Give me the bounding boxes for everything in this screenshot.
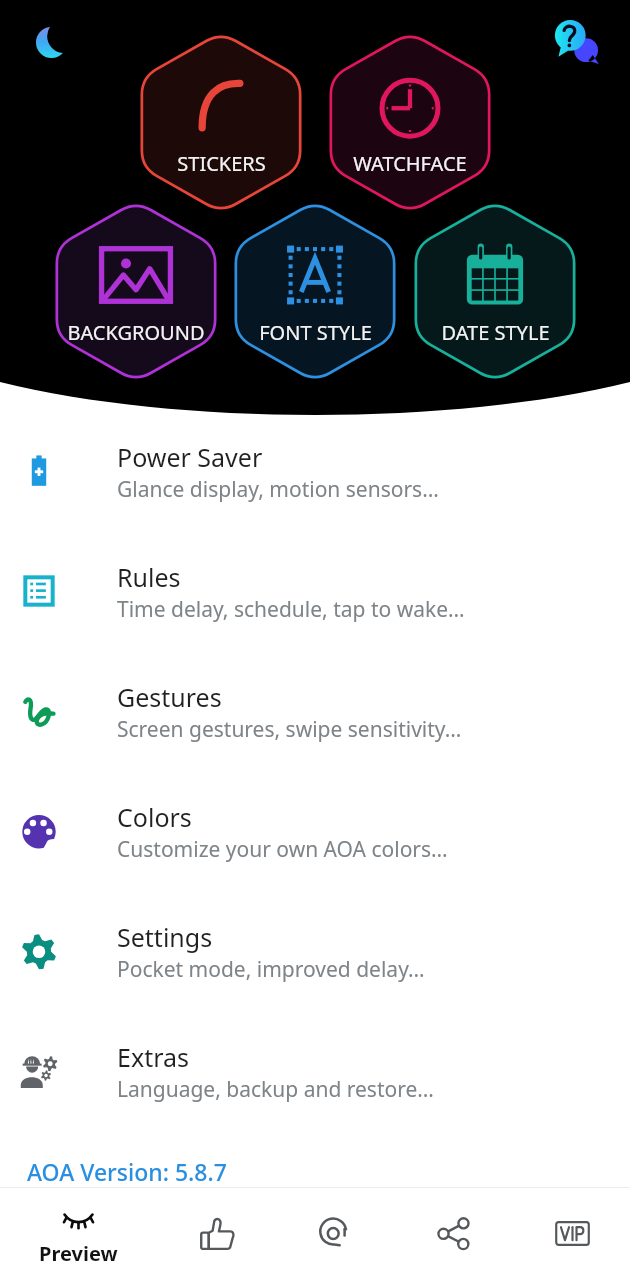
staticText: Rules <box>117 560 181 594</box>
staticText: Language, backup and restore… <box>117 1075 434 1104</box>
staticText: Extras <box>117 1040 189 1074</box>
staticText: Power Saver <box>117 440 263 474</box>
staticText: STICKERS <box>177 150 266 177</box>
button[interactable]: VIP <box>516 1187 628 1280</box>
button[interactable]: Extras <box>0 1014 630 1134</box>
button[interactable]: Gestures <box>0 654 630 774</box>
button[interactable]: Share <box>397 1187 509 1280</box>
button[interactable]: Settings <box>0 894 630 1014</box>
button[interactable]: BACKGROUND <box>43 200 229 383</box>
staticText: AOA Version: 5.8.7 <box>27 1156 227 1187</box>
staticText: Glance display, motion sensors… <box>117 475 439 504</box>
button[interactable]: WATCHFACE <box>317 31 503 214</box>
staticText: BACKGROUND <box>67 319 205 346</box>
staticText: WATCHFACE <box>353 150 467 177</box>
staticText: Customize your own AOA colors… <box>117 835 448 864</box>
staticText: Gestures <box>117 680 222 714</box>
button[interactable]: Rate this app <box>161 1187 273 1280</box>
staticText: Colors <box>117 800 192 834</box>
staticText: DATE STYLE <box>441 319 550 346</box>
button[interactable]: DATE STYLE <box>402 200 588 383</box>
button[interactable]: Power Saver <box>0 414 630 534</box>
button[interactable]: STICKERS <box>128 31 314 214</box>
staticText: Time delay, schedule, tap to wake… <box>117 595 465 624</box>
button[interactable]: Colors <box>0 774 630 894</box>
button[interactable]: Contact us <box>279 1187 391 1280</box>
staticText: Settings <box>117 920 213 954</box>
staticText: FONT STYLE <box>259 319 372 346</box>
button[interactable]: FONT STYLE <box>222 200 408 383</box>
staticText: Screen gestures, swipe sensitivity… <box>117 715 462 744</box>
staticText: Pocket mode, improved delay… <box>117 955 425 984</box>
staticText: Preview <box>39 1240 118 1267</box>
button[interactable]: Preview <box>22 1187 134 1280</box>
button[interactable]: Night mode <box>17 8 85 76</box>
button[interactable]: Help <box>541 6 609 74</box>
button[interactable]: Rules <box>0 534 630 654</box>
